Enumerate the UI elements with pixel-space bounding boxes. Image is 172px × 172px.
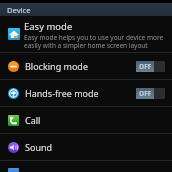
button[interactable]: Easy mode — [0, 16, 172, 52]
staticText: Easy mode — [24, 20, 73, 33]
button[interactable]: Blocking mode toggle, off — [136, 61, 165, 72]
button[interactable]: Hands-free mode — [0, 80, 172, 106]
button[interactable]: Call — [0, 107, 172, 133]
button[interactable]: Hands-free mode toggle, off — [136, 88, 165, 99]
staticText: OFF — [139, 89, 152, 98]
staticText: OFF — [139, 62, 152, 71]
staticText: Device — [7, 5, 31, 15]
staticText: Call — [25, 114, 41, 126]
button[interactable]: Display — [0, 161, 172, 172]
button[interactable]: Blocking mode — [0, 53, 172, 79]
staticText: Sound — [25, 141, 53, 153]
staticText: Blocking mode — [25, 60, 88, 72]
button[interactable]: Sound — [0, 134, 172, 160]
staticText: Hands-free mode — [25, 87, 99, 99]
staticText: Easy mode helps you to use your device m… — [24, 33, 164, 50]
